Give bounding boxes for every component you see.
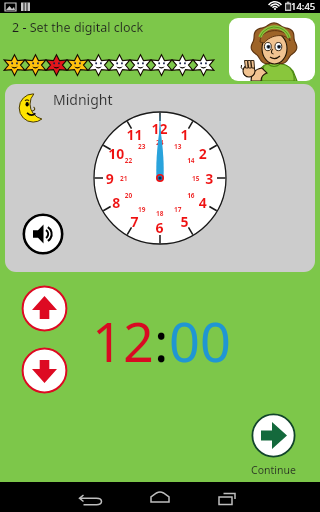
button[interactable]: Decrease (21, 347, 68, 394)
staticText: 00 (169, 304, 231, 378)
button[interactable]: Home (138, 482, 182, 512)
button[interactable]: Recents (205, 482, 249, 512)
staticText: Continue (251, 463, 296, 477)
staticText: : (154, 304, 169, 378)
button[interactable]: Continue (251, 413, 296, 477)
button[interactable]: Character (229, 18, 315, 81)
staticText: 12 (92, 304, 154, 378)
staticText: 14:45 (291, 0, 316, 13)
button[interactable]: Back (70, 482, 114, 512)
staticText: 2 - Set the digital clock (12, 19, 144, 36)
staticText: Midnight (53, 90, 113, 109)
button[interactable]: Play sound (22, 213, 64, 255)
button[interactable]: Increase (21, 285, 68, 332)
